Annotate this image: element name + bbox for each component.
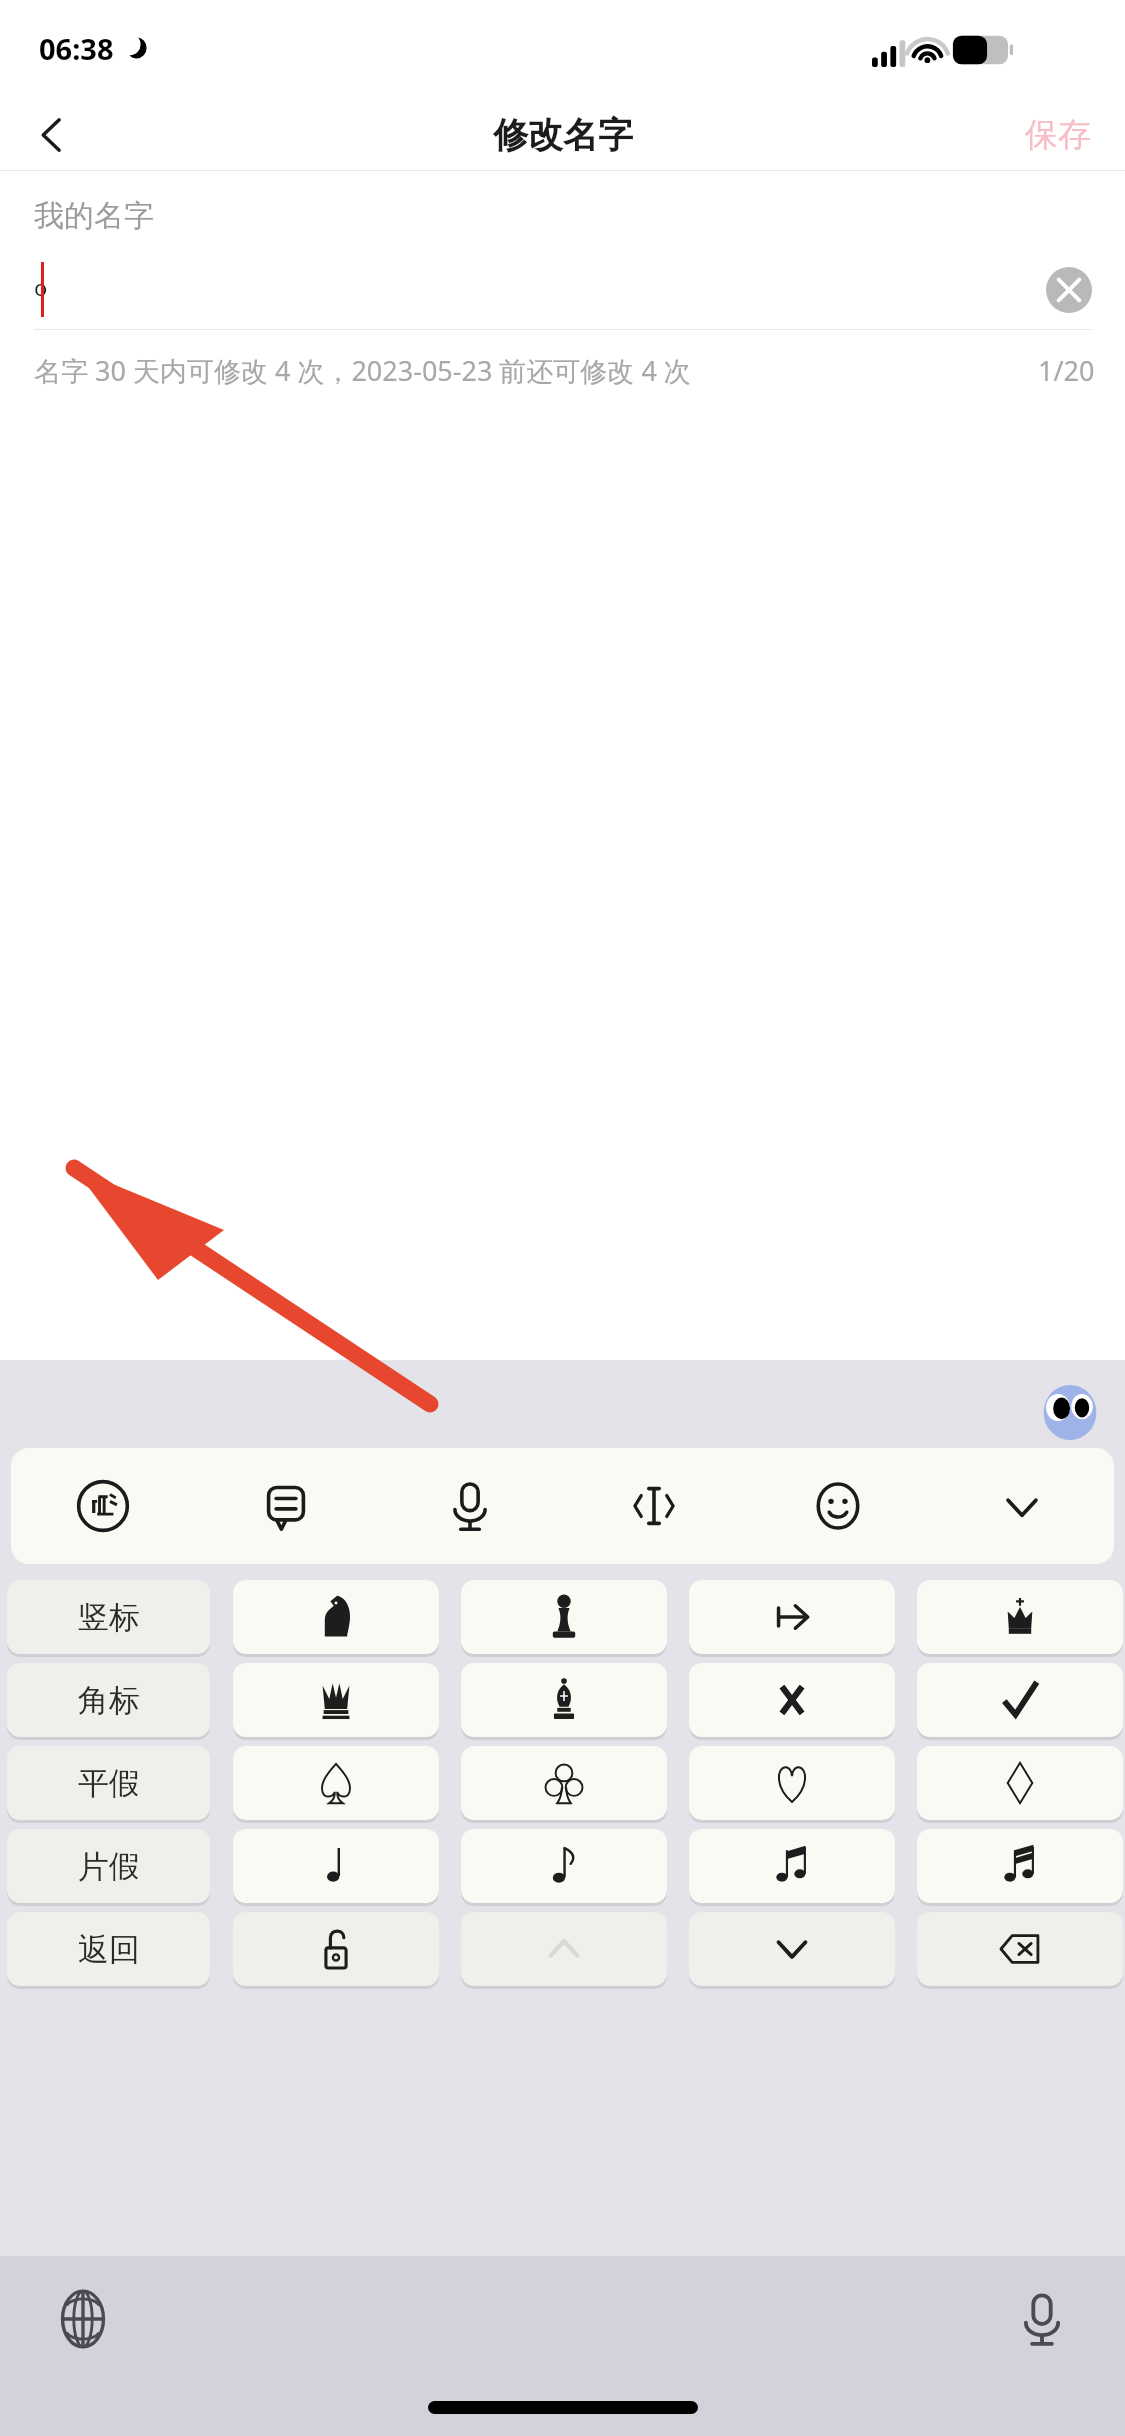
button[interactable]: xmark [689, 1663, 895, 1737]
button[interactable]: Dictation [997, 2274, 1087, 2364]
button[interactable]: 竖标 [7, 1580, 210, 1654]
button[interactable]: crown [917, 1580, 1123, 1654]
staticText: o [34, 272, 48, 302]
button[interactable]: Voice input [378, 1448, 562, 1564]
button[interactable]: note1 [233, 1829, 439, 1903]
button[interactable]: Input method [11, 1448, 194, 1564]
staticText: 我的名字 [34, 197, 154, 235]
button[interactable]: pawn [461, 1580, 667, 1654]
button[interactable]: queen [233, 1663, 439, 1737]
button[interactable]: spade [233, 1746, 439, 1820]
staticText: 06:38 [39, 29, 114, 68]
button[interactable]: note4 [917, 1829, 1123, 1903]
staticText: 竖标 [78, 1598, 140, 1637]
button[interactable]: Clear [1041, 262, 1097, 318]
button[interactable]: note2 [461, 1829, 667, 1903]
button[interactable]: del [917, 1912, 1123, 1986]
button[interactable]: 保存 [1011, 106, 1105, 164]
staticText: 名字 30 天内可修改 4 次，2023-05-23 前还可修改 4 次 [34, 352, 691, 389]
button[interactable]: Hide keyboard [930, 1448, 1114, 1564]
staticText: 平假 [78, 1764, 140, 1803]
staticText: 角标 [78, 1681, 140, 1720]
staticText: 返回 [78, 1930, 140, 1969]
button[interactable]: Back [10, 100, 94, 170]
button[interactable]: 片假 [7, 1829, 210, 1903]
button[interactable]: Move cursor [562, 1448, 746, 1564]
button[interactable]: heart [689, 1746, 895, 1820]
button[interactable]: diamond [917, 1746, 1123, 1820]
button[interactable]: 平假 [7, 1746, 210, 1820]
button[interactable]: club [461, 1746, 667, 1820]
button[interactable]: knight [233, 1580, 439, 1654]
button[interactable]: Switch language [38, 2274, 128, 2364]
button[interactable]: note3 [689, 1829, 895, 1903]
staticText: 片假 [78, 1847, 140, 1886]
button[interactable]: bishop [461, 1663, 667, 1737]
button[interactable]: Emoji [746, 1448, 930, 1564]
button[interactable]: Phrases [194, 1448, 378, 1564]
staticText: 1/20 [1038, 352, 1095, 389]
button[interactable]: check [917, 1663, 1123, 1737]
button[interactable]: 返回 [7, 1912, 210, 1986]
staticText: 保存 [1025, 114, 1091, 156]
staticText: 修改名字 [493, 113, 633, 157]
button[interactable]: arrowtail [689, 1580, 895, 1654]
button[interactable]: lock [233, 1912, 439, 1986]
button[interactable]: down2 [689, 1912, 895, 1986]
button[interactable]: 角标 [7, 1663, 210, 1737]
button[interactable]: up [461, 1912, 667, 1986]
